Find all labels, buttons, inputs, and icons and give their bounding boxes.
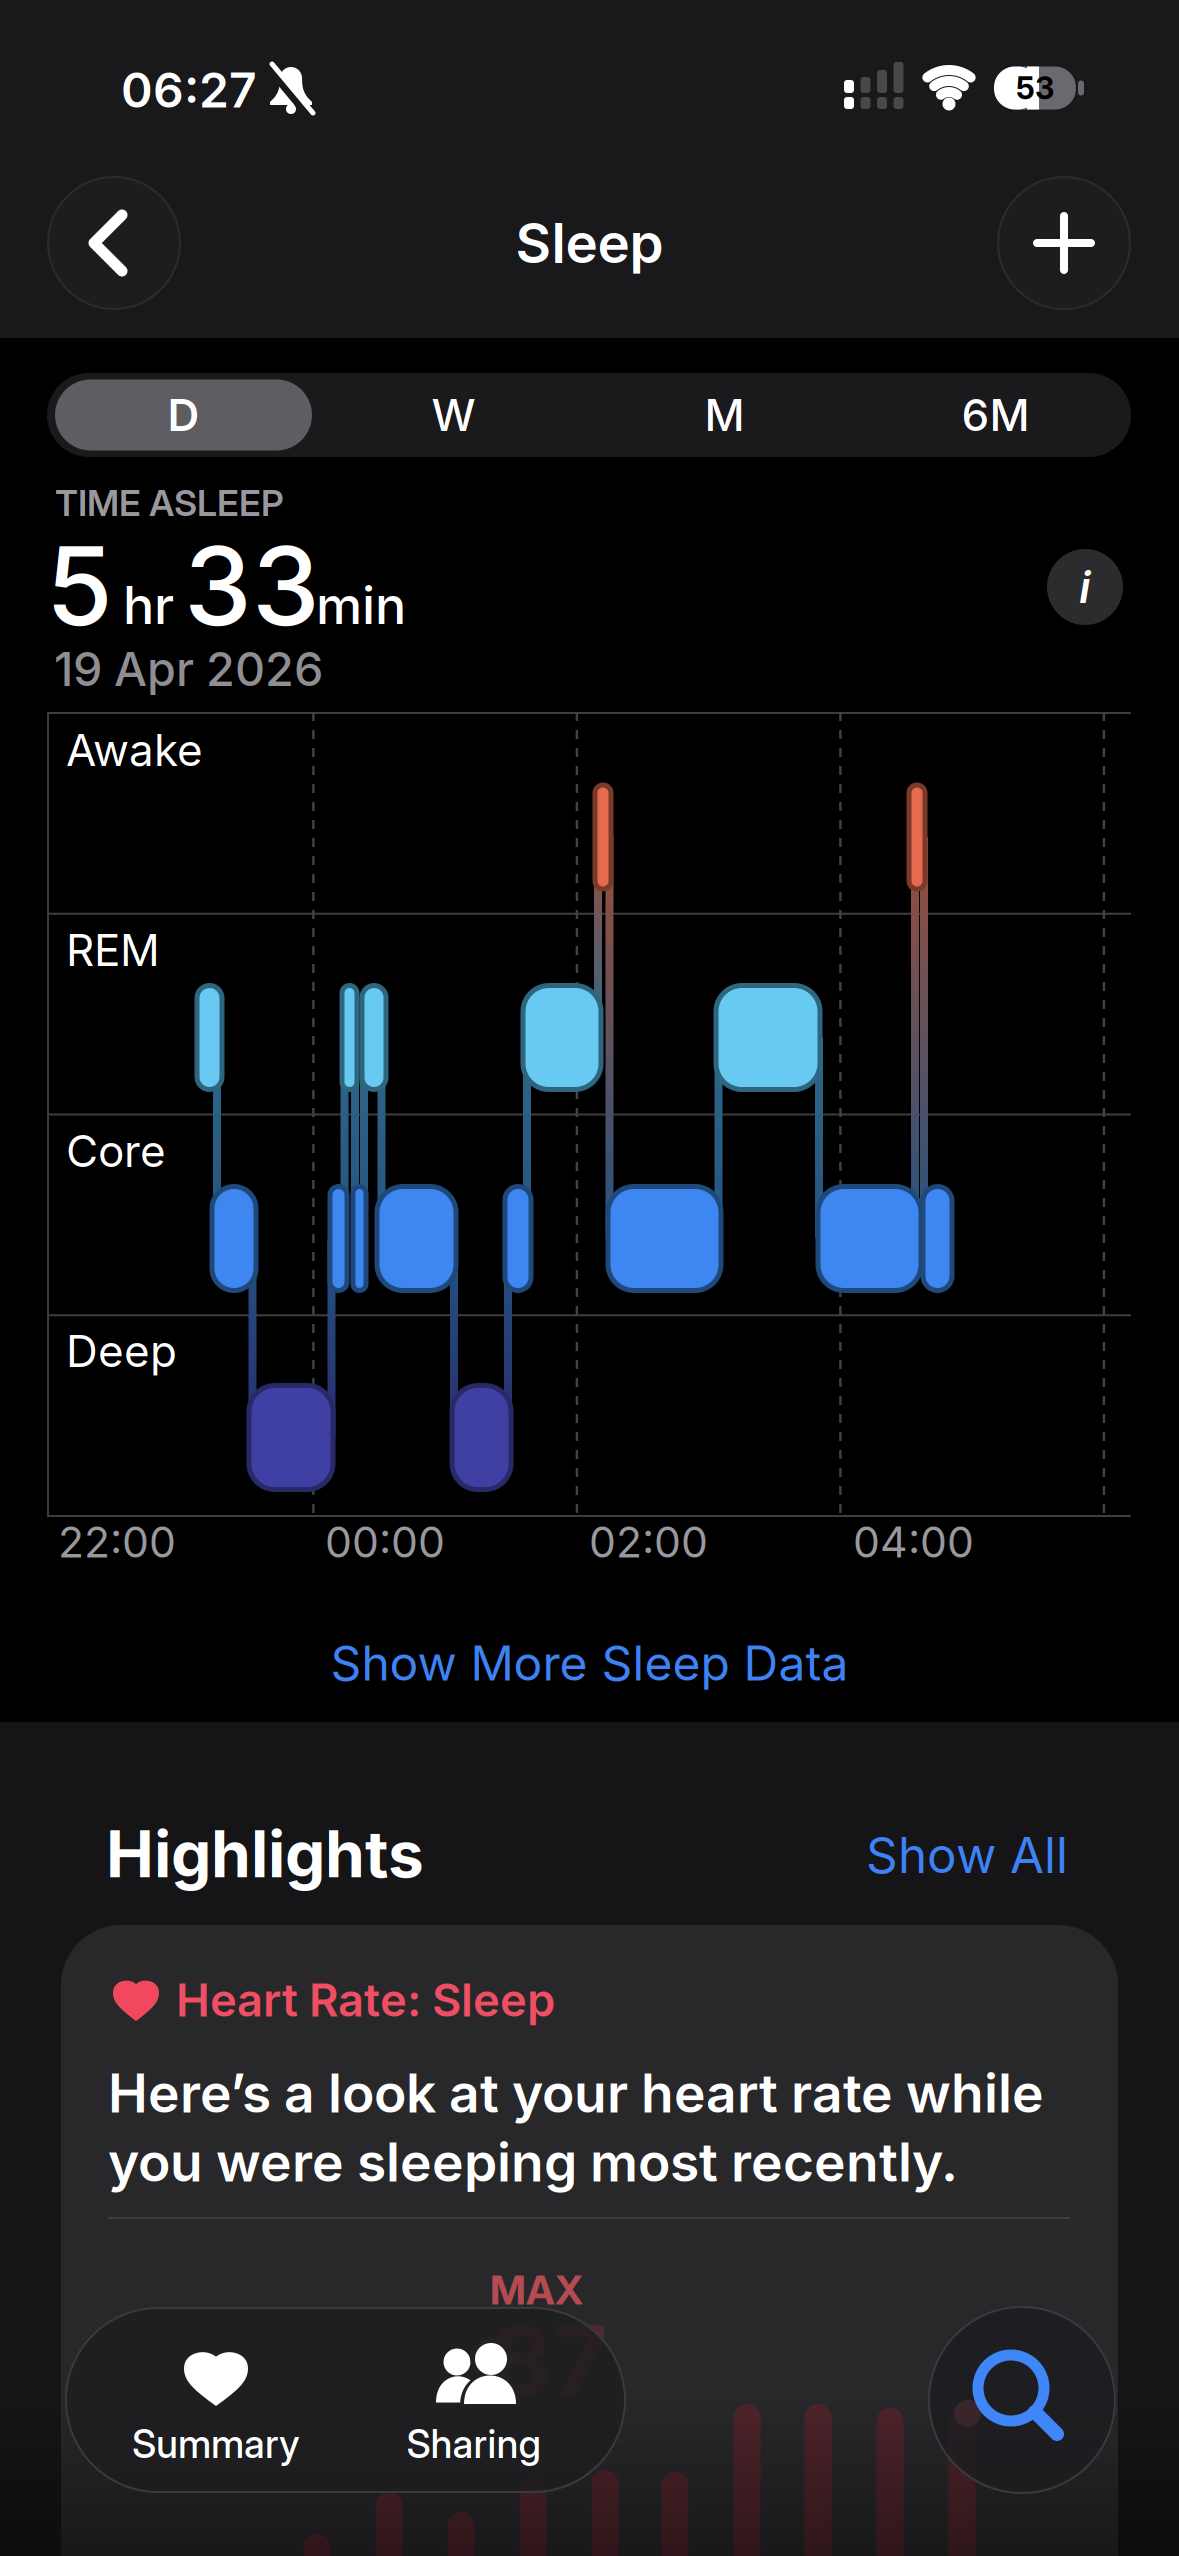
staticText: 5 [46,522,113,650]
staticText: you were sleeping most recently. [108,2130,958,2193]
button[interactable]: Show All [748,1823,1068,1887]
staticText: Core [66,1125,166,1177]
staticText: Here’s a look at your heart rate while [108,2061,1044,2124]
staticText: hr [123,574,174,636]
staticText: TIME ASLEEP [55,482,284,524]
staticText: 33 [184,522,320,650]
staticText: Heart Rate: Sleep [176,1973,555,2027]
button[interactable]: Add Data [998,177,1130,309]
staticText: M [704,389,744,441]
staticText: 6M [961,389,1029,441]
staticText: W [431,389,475,441]
button[interactable]: About Time Asleep [1047,549,1123,625]
staticText: REM [66,924,160,976]
staticText: D [167,389,199,441]
staticText: Sharing [406,2421,541,2467]
staticText: 00:00 [325,1517,445,1567]
button[interactable]: Show More Sleep Data [209,1628,969,1698]
staticText: 87 [490,2304,607,2416]
staticText: 19 Apr 2026 [54,641,323,697]
button[interactable]: Heart Rate: Sleep [61,1925,1118,2556]
staticText: Sleep [515,211,663,275]
staticText: 04:00 [853,1517,974,1567]
staticText: 22:00 [58,1517,176,1567]
button[interactable]: Back [48,177,180,309]
staticText: 06:27 [121,62,257,118]
staticText: Summary [132,2421,300,2467]
button[interactable]: D [55,379,312,450]
button[interactable]: W [353,379,553,450]
staticText: 02:00 [589,1517,708,1567]
button[interactable]: M [624,379,824,450]
staticText: MAX [490,2266,583,2314]
staticText: Deep [66,1325,177,1377]
button[interactable]: Summary [81,2308,351,2492]
staticText: min [316,574,406,636]
button[interactable]: Search [929,2307,1115,2493]
staticText: i [1079,560,1091,614]
staticText: Show More Sleep Data [330,1635,848,1691]
staticText: Awake [66,724,203,776]
staticText: Highlights [106,1816,424,1892]
button[interactable]: 6M [895,379,1095,450]
button[interactable]: Sharing [339,2308,609,2492]
staticText: Show All [866,1826,1068,1884]
staticText: 53 [1016,70,1054,106]
